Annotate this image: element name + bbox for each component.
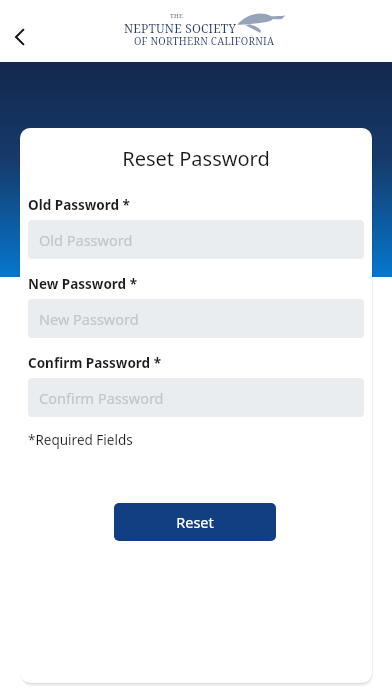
staticText: Old Password (39, 230, 133, 250)
staticText: Reset (176, 512, 214, 532)
button[interactable]: Old Password (28, 220, 364, 259)
staticText: THE (170, 12, 184, 20)
staticText: NEPTUNE SOCIETY (124, 20, 237, 36)
staticText: OF NORTHERN CALIFORNIA (134, 34, 275, 48)
staticText: Confirm Password * (28, 354, 161, 372)
staticText: Confirm Password (39, 388, 164, 408)
button[interactable]: Reset (114, 503, 276, 541)
button[interactable]: Confirm Password (28, 378, 364, 417)
staticText: New Password * (28, 275, 137, 293)
staticText: *Required Fields (28, 431, 133, 449)
staticText: Old Password * (28, 196, 130, 214)
button[interactable]: Back (2, 19, 38, 55)
staticText: New Password (39, 309, 139, 329)
staticText: Reset Password (20, 145, 372, 172)
button[interactable]: New Password (28, 299, 364, 338)
